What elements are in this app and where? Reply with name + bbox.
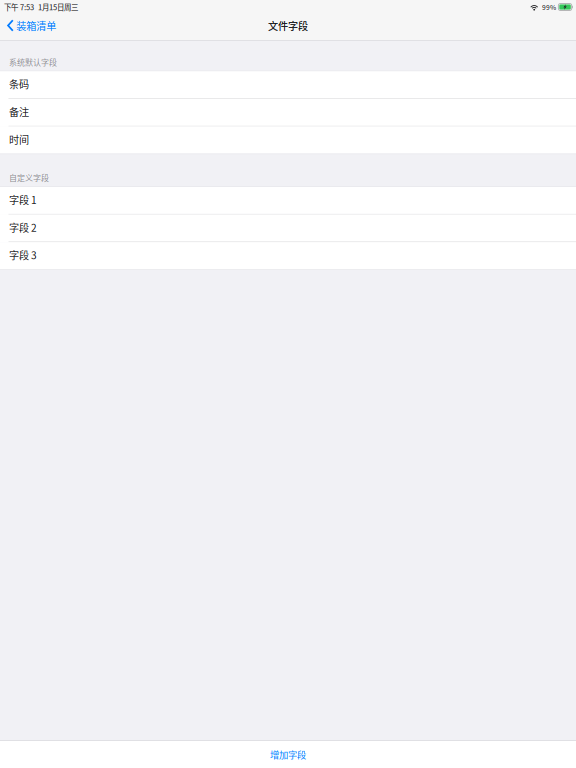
button[interactable]: 装箱清单 [0, 14, 64, 40]
button[interactable]: 增加字段 [0, 741, 576, 768]
staticText: 自定义字段 [9, 172, 49, 183]
button[interactable]: 字段 2 [0, 215, 576, 242]
button[interactable]: 字段 1 [0, 187, 576, 215]
staticText: 增加字段 [270, 748, 306, 761]
button[interactable]: 字段 3 [0, 242, 576, 269]
staticText: 文件字段 [268, 18, 308, 33]
button[interactable]: 备注 [0, 99, 576, 126]
staticText: 99% [542, 2, 556, 12]
button[interactable]: 时间 [0, 126, 576, 154]
staticText: 装箱清单 [16, 18, 56, 33]
staticText: 时间 [9, 132, 29, 147]
button[interactable]: 条码 [0, 71, 576, 99]
staticText: 字段 1 [9, 192, 37, 207]
staticText: 字段 3 [9, 248, 37, 262]
staticText: 备注 [9, 104, 29, 119]
staticText: 条码 [9, 77, 29, 91]
staticText: 字段 2 [9, 220, 37, 235]
staticText: 下午 7:53 1月15日周三 [4, 2, 78, 12]
staticText: 系统默认字段 [9, 56, 57, 68]
